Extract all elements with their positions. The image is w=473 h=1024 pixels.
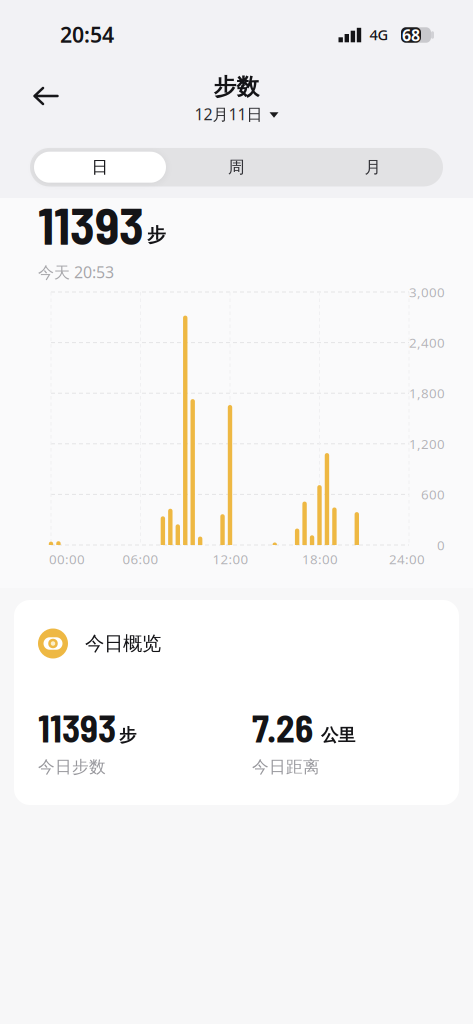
staticText: 今日距离 (252, 756, 320, 777)
staticText: 11393 (38, 705, 116, 750)
staticText: 今日概览 (85, 631, 161, 656)
staticText: 日 (91, 157, 108, 178)
staticText: 4G (369, 25, 388, 44)
staticText: 600 (421, 485, 445, 503)
staticText: 步 (119, 725, 136, 746)
button[interactable]: 12月11日 (194, 103, 278, 125)
button[interactable]: 周 (168, 148, 305, 186)
staticText: 步数 (213, 73, 259, 101)
staticText: 00:00 (49, 550, 85, 568)
button[interactable]: 日 (31, 148, 168, 186)
button[interactable]: Back (33, 87, 59, 105)
staticText: 3,000 (409, 283, 445, 301)
staticText: 24:00 (389, 550, 425, 568)
button[interactable]: 月 (304, 148, 441, 186)
staticText: 20:54 (60, 20, 114, 49)
staticText: 步 (147, 223, 166, 246)
staticText: 12:00 (212, 550, 248, 568)
staticText: 12月11日 (194, 103, 262, 125)
staticText: 7.26 (252, 705, 313, 750)
staticText: 月 (364, 157, 381, 178)
staticText: 18:00 (302, 550, 338, 568)
staticText: 周 (228, 157, 245, 178)
staticText: 0 (437, 536, 445, 554)
staticText: 1,800 (409, 384, 445, 402)
staticText: 11393 (38, 194, 144, 255)
staticText: 06:00 (122, 550, 158, 568)
staticText: 今天 20:53 (38, 261, 114, 283)
staticText: 68 (402, 24, 420, 46)
staticText: 2,400 (409, 334, 445, 351)
staticText: 公里 (321, 725, 355, 746)
staticText: 今日步数 (38, 756, 106, 777)
staticText: 1,200 (409, 435, 445, 453)
